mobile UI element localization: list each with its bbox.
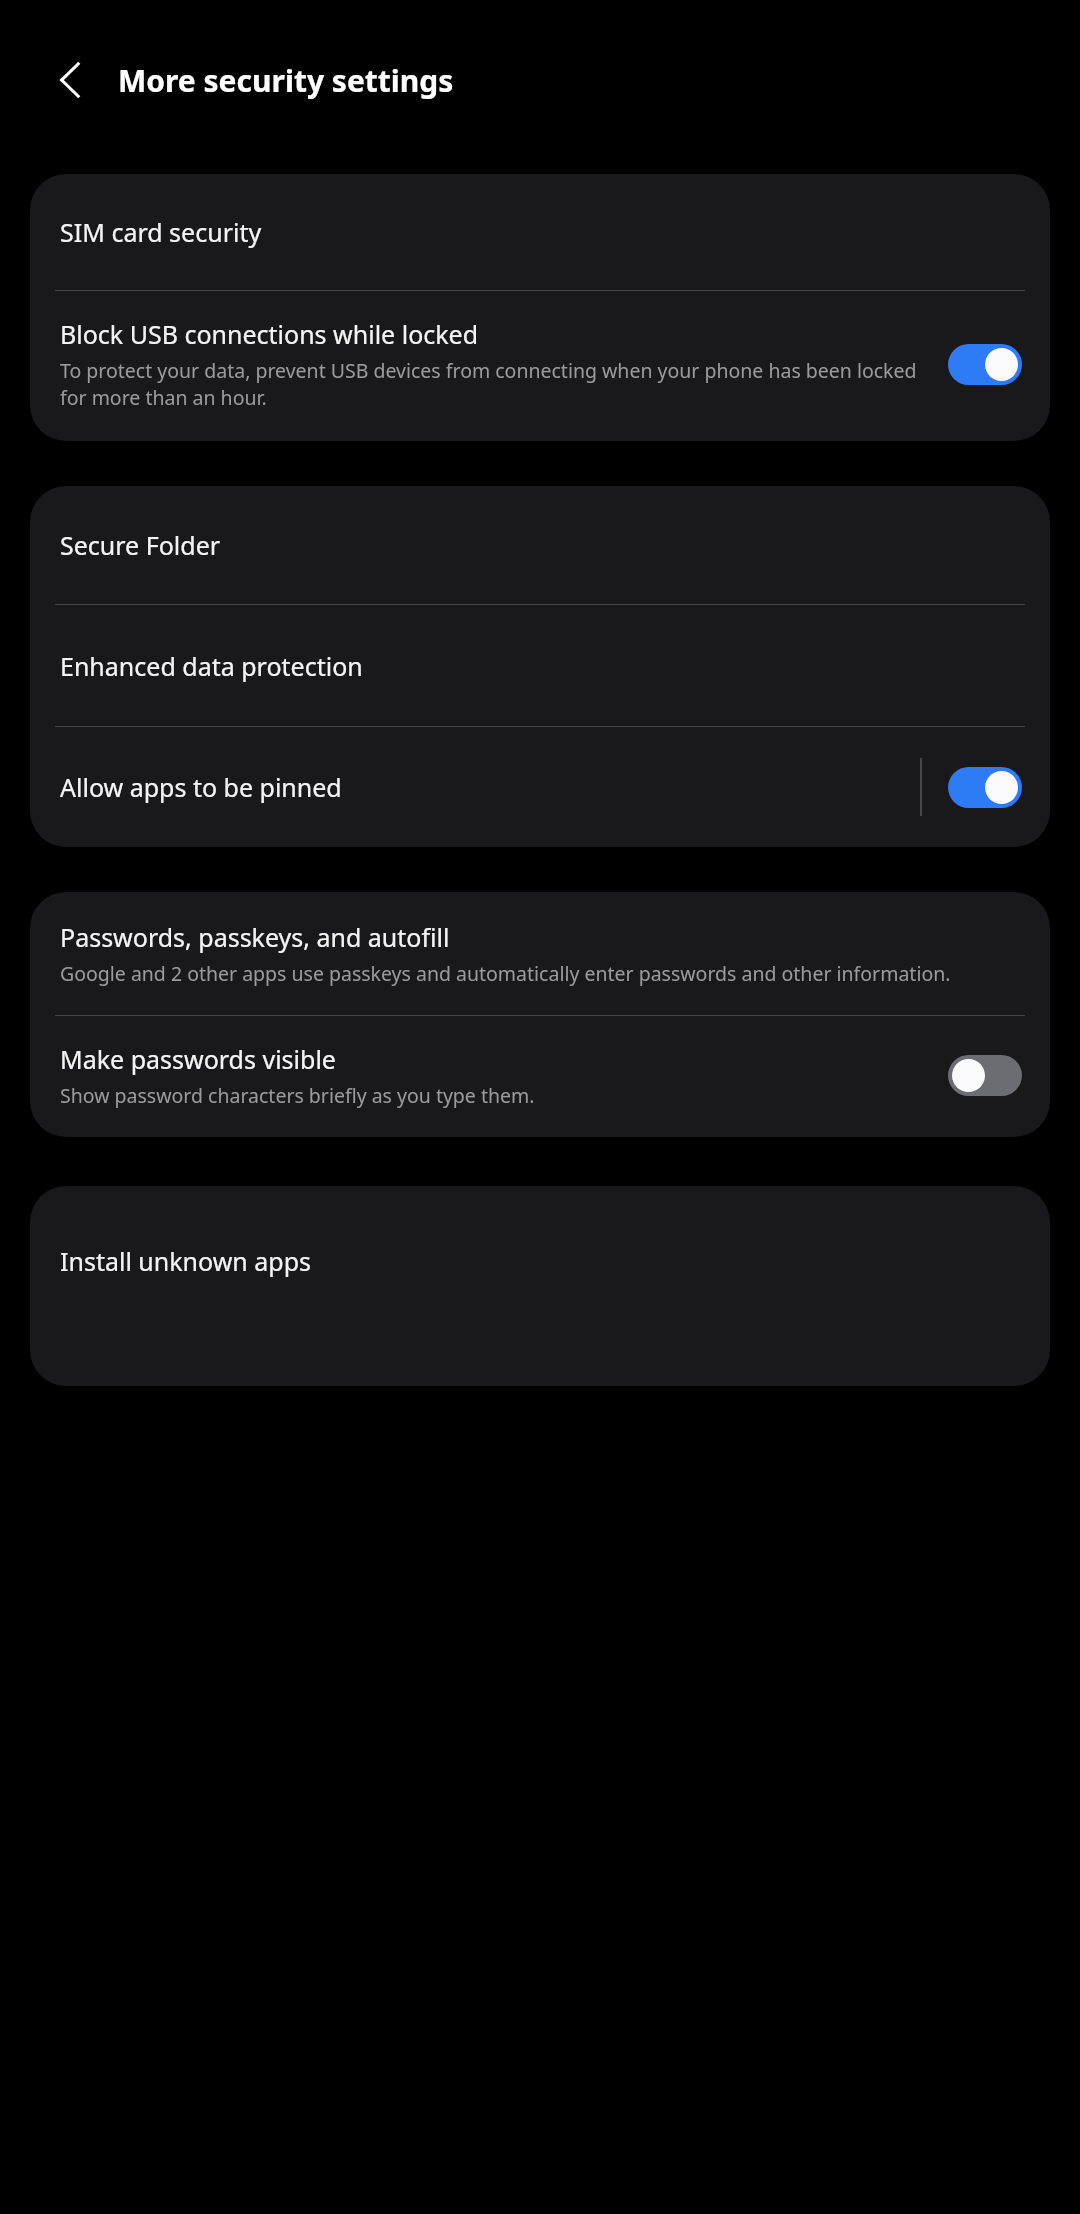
button[interactable]: Back [42, 51, 100, 109]
button[interactable]: Install unknown apps [30, 1186, 1050, 1386]
button[interactable]: Enhanced data protection [30, 605, 1050, 726]
staticText: Passwords, passkeys, and autofill [60, 920, 450, 954]
button[interactable]: Make passwords visible [30, 1016, 1050, 1137]
staticText: Block USB connections while locked [60, 317, 479, 351]
staticText: Secure Folder [60, 528, 221, 562]
button[interactable]: Passwords, passkeys, and autofill [30, 892, 1050, 1015]
button[interactable]: Block USB connections while locked [30, 291, 1050, 441]
staticText: Install unknown apps [60, 1244, 312, 1278]
staticText: SIM card security [60, 215, 262, 249]
button[interactable]: Toggle on [948, 767, 1022, 808]
button[interactable]: SIM card security [30, 174, 1050, 290]
staticText: Google and 2 other apps use passkeys and… [60, 960, 951, 987]
staticText: Enhanced data protection [60, 649, 363, 683]
button[interactable]: Toggle off [948, 1055, 1022, 1096]
staticText: Allow apps to be pinned [60, 770, 342, 804]
button[interactable]: Secure Folder [30, 486, 1050, 604]
staticText: Make passwords visible [60, 1042, 336, 1076]
button[interactable]: Toggle on [948, 344, 1022, 385]
staticText: To protect your data, prevent USB device… [60, 357, 928, 411]
staticText: Show password characters briefly as you … [60, 1082, 535, 1109]
button[interactable]: Allow apps to be pinned [30, 727, 920, 847]
staticText: More security settings [118, 60, 454, 101]
